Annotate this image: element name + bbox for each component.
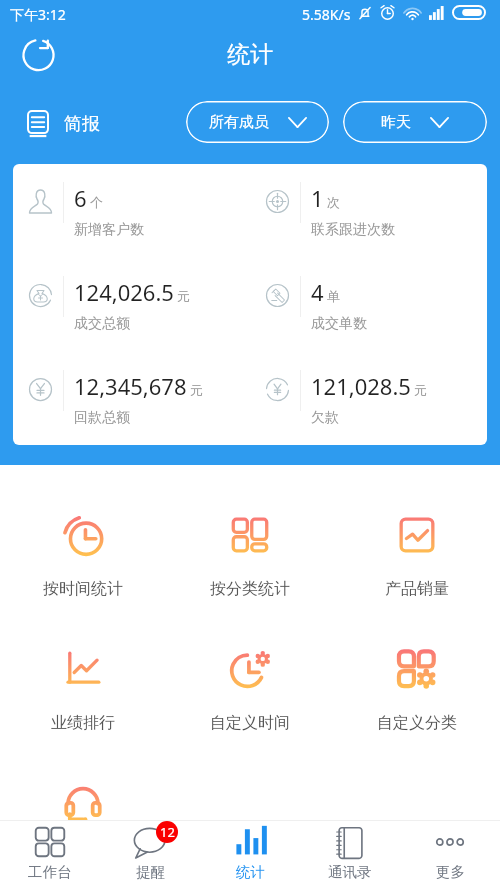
staticText: 按时间统计 (43, 579, 123, 599)
button[interactable]: 按时间统计 (0, 513, 166, 599)
staticText: 12 (160, 823, 175, 841)
staticText: 成交总额 (74, 315, 130, 333)
staticText: 次 (327, 194, 340, 210)
staticText: 更多 (436, 863, 465, 881)
staticText: 昨天 (381, 113, 411, 132)
staticText: 下午3:12 (10, 5, 66, 24)
staticText: 提醒 (136, 863, 165, 881)
staticText: 自定义分类 (377, 713, 457, 733)
staticText: 元 (190, 382, 203, 398)
staticText: 121,028.5 (311, 371, 411, 401)
button[interactable]: 121,028.5 (250, 371, 487, 437)
staticText: 所有成员 (209, 113, 269, 132)
button[interactable]: 业绩排行 (0, 647, 166, 733)
button[interactable]: 自定义分类 (333, 647, 500, 733)
button[interactable]: 按分类统计 (166, 513, 333, 599)
staticText: 12,345,678 (74, 371, 187, 401)
staticText: 5.58K/s (302, 5, 351, 24)
staticText: 产品销量 (385, 579, 449, 599)
staticText: 按分类统计 (210, 579, 290, 599)
staticText: 个 (90, 194, 103, 210)
button[interactable]: 产品销量 (333, 513, 500, 599)
button[interactable]: 自定义时间 (166, 647, 333, 733)
staticText: 元 (414, 382, 427, 398)
staticText: 1 (311, 183, 324, 213)
staticText: 124,026.5 (74, 277, 174, 307)
staticText: 统计 (236, 863, 265, 881)
staticText: 成交单数 (311, 315, 367, 333)
button[interactable]: 4 (250, 277, 487, 343)
button[interactable]: 12 (100, 821, 200, 889)
staticText: 统计 (227, 40, 273, 69)
staticText: 联系跟进次数 (311, 221, 395, 239)
button[interactable]: 工作台 (0, 821, 100, 889)
staticText: 欠款 (311, 409, 339, 427)
button[interactable]: 简报 (21, 106, 106, 142)
staticText: 6 (74, 183, 87, 213)
staticText: 业绩排行 (51, 713, 115, 733)
button[interactable]: 6 (13, 183, 250, 249)
staticText: 回款总额 (74, 409, 130, 427)
button[interactable]: 统计 (200, 821, 300, 889)
staticText: 元 (177, 288, 190, 304)
staticText: 简报 (64, 113, 100, 136)
staticText: 新增客户数 (74, 221, 144, 239)
button[interactable]: 124,026.5 (13, 277, 250, 343)
button[interactable]: 1 (250, 183, 487, 249)
button[interactable]: 昨天 (343, 101, 487, 143)
button[interactable]: 12,345,678 (13, 371, 250, 437)
button[interactable] (0, 779, 166, 820)
button[interactable]: Refresh (14, 30, 62, 78)
staticText: 单 (327, 288, 340, 304)
button[interactable]: 所有成员 (186, 101, 329, 143)
staticText: 工作台 (28, 863, 72, 881)
staticText: 通讯录 (328, 863, 372, 881)
button[interactable]: 更多 (400, 821, 500, 889)
staticText: 4 (311, 277, 324, 307)
button[interactable]: 通讯录 (300, 821, 400, 889)
staticText: 自定义时间 (210, 713, 290, 733)
